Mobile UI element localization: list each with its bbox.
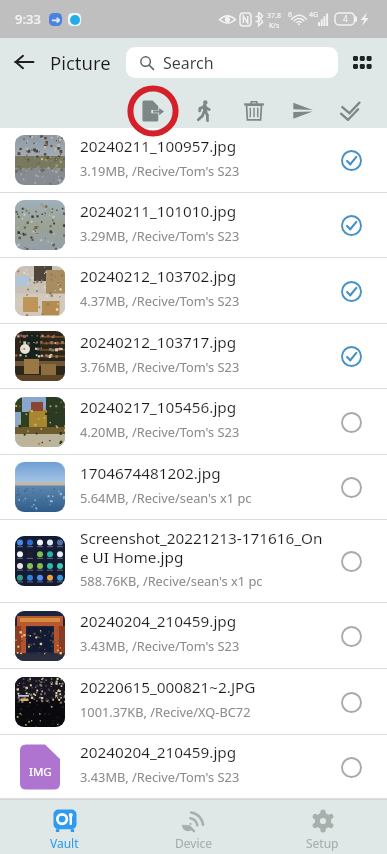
staticText: Setup bbox=[306, 835, 339, 851]
button[interactable]: 1704674481202.jpg bbox=[0, 455, 387, 520]
staticText: 20240204_210459.jpg bbox=[80, 742, 237, 763]
button[interactable]: Device bbox=[129, 803, 258, 854]
button[interactable]: Screenshot_20221213-171616_One UI Home.j… bbox=[0, 520, 387, 603]
staticText: 6 bbox=[288, 10, 293, 20]
staticText: 1001.37KB, /Recive/XQ-BC72 bbox=[80, 703, 251, 720]
button[interactable]: Not selected bbox=[333, 404, 369, 440]
staticText: Vault bbox=[50, 835, 79, 851]
staticText: 9:33 bbox=[15, 10, 41, 28]
staticText: Screenshot_20221213-171616_One UI Home.j… bbox=[80, 528, 325, 567]
staticText: 1704674481202.jpg bbox=[80, 463, 221, 484]
button[interactable]: Send bbox=[284, 92, 322, 130]
staticText: 20240204_210459.jpg bbox=[80, 611, 237, 632]
button[interactable]: 20240212_103717.jpg bbox=[0, 324, 387, 389]
button[interactable]: Selected bbox=[333, 142, 369, 178]
button[interactable]: Not selected bbox=[333, 749, 369, 785]
button[interactable]: Selected bbox=[333, 273, 369, 309]
button[interactable]: 20240211_101010.jpg bbox=[0, 193, 387, 258]
button[interactable]: Not selected bbox=[333, 618, 369, 654]
staticText: 3.43MB, /Recive/Tom's S23 bbox=[80, 637, 240, 654]
button[interactable]: 20220615_000821~2.JPG bbox=[0, 669, 387, 735]
staticText: IMG bbox=[29, 764, 52, 780]
button[interactable]: Grid view bbox=[338, 38, 387, 86]
staticText: 4 bbox=[343, 13, 348, 25]
staticText: 3.29MB, /Recive/Tom's S23 bbox=[80, 227, 240, 244]
button[interactable]: Export bbox=[134, 92, 172, 130]
staticText: 4.20MB, /Recive/Tom's S23 bbox=[80, 423, 240, 440]
staticText: 37.8 bbox=[267, 11, 281, 21]
staticText: 3.19MB, /Recive/Tom's S23 bbox=[80, 162, 240, 179]
button[interactable]: Move bbox=[185, 92, 223, 130]
button[interactable]: Selected bbox=[333, 207, 369, 243]
staticText: 20220615_000821~2.JPG bbox=[80, 677, 256, 698]
button[interactable]: Not selected bbox=[333, 469, 369, 505]
button[interactable]: Select all bbox=[333, 92, 371, 130]
staticText: 4.37MB, /Recive/Tom's S23 bbox=[80, 292, 240, 309]
staticText: 5.64MB, /Recive/sean's x1 pc bbox=[80, 489, 252, 506]
button[interactable]: Not selected bbox=[333, 543, 369, 579]
staticText: 3.76MB, /Recive/Tom's S23 bbox=[80, 358, 240, 375]
staticText: 4G bbox=[309, 10, 319, 20]
staticText: K/s bbox=[269, 21, 280, 31]
button[interactable]: 20240204_210459.jpg bbox=[0, 603, 387, 669]
staticText: Search bbox=[163, 52, 214, 74]
staticText: 3.43MB, /Recive/Tom's S23 bbox=[80, 768, 240, 785]
button[interactable]: 20240212_103702.jpg bbox=[0, 258, 387, 324]
button[interactable]: Selected bbox=[333, 338, 369, 374]
button[interactable]: Delete bbox=[235, 92, 273, 130]
staticText: 20240217_105456.jpg bbox=[80, 397, 237, 418]
staticText: 20240212_103717.jpg bbox=[80, 332, 237, 353]
staticText: 20240212_103702.jpg bbox=[80, 266, 237, 287]
button[interactable]: Back bbox=[0, 38, 48, 86]
staticText: 20240211_100957.jpg bbox=[80, 136, 237, 157]
button[interactable]: Vault bbox=[0, 803, 129, 854]
staticText: 588.76KB, /Recive/sean's x1 pc bbox=[80, 572, 263, 589]
button[interactable]: Search bbox=[126, 47, 338, 78]
staticText: Picture bbox=[50, 50, 111, 75]
button[interactable]: Setup bbox=[258, 803, 387, 854]
button[interactable]: 20240211_100957.jpg bbox=[0, 128, 387, 193]
staticText: Device bbox=[175, 835, 213, 851]
button[interactable]: 20240217_105456.jpg bbox=[0, 389, 387, 455]
staticText: 20240211_101010.jpg bbox=[80, 201, 237, 222]
button[interactable]: Not selected bbox=[333, 684, 369, 720]
button[interactable]: IMG bbox=[0, 735, 387, 799]
